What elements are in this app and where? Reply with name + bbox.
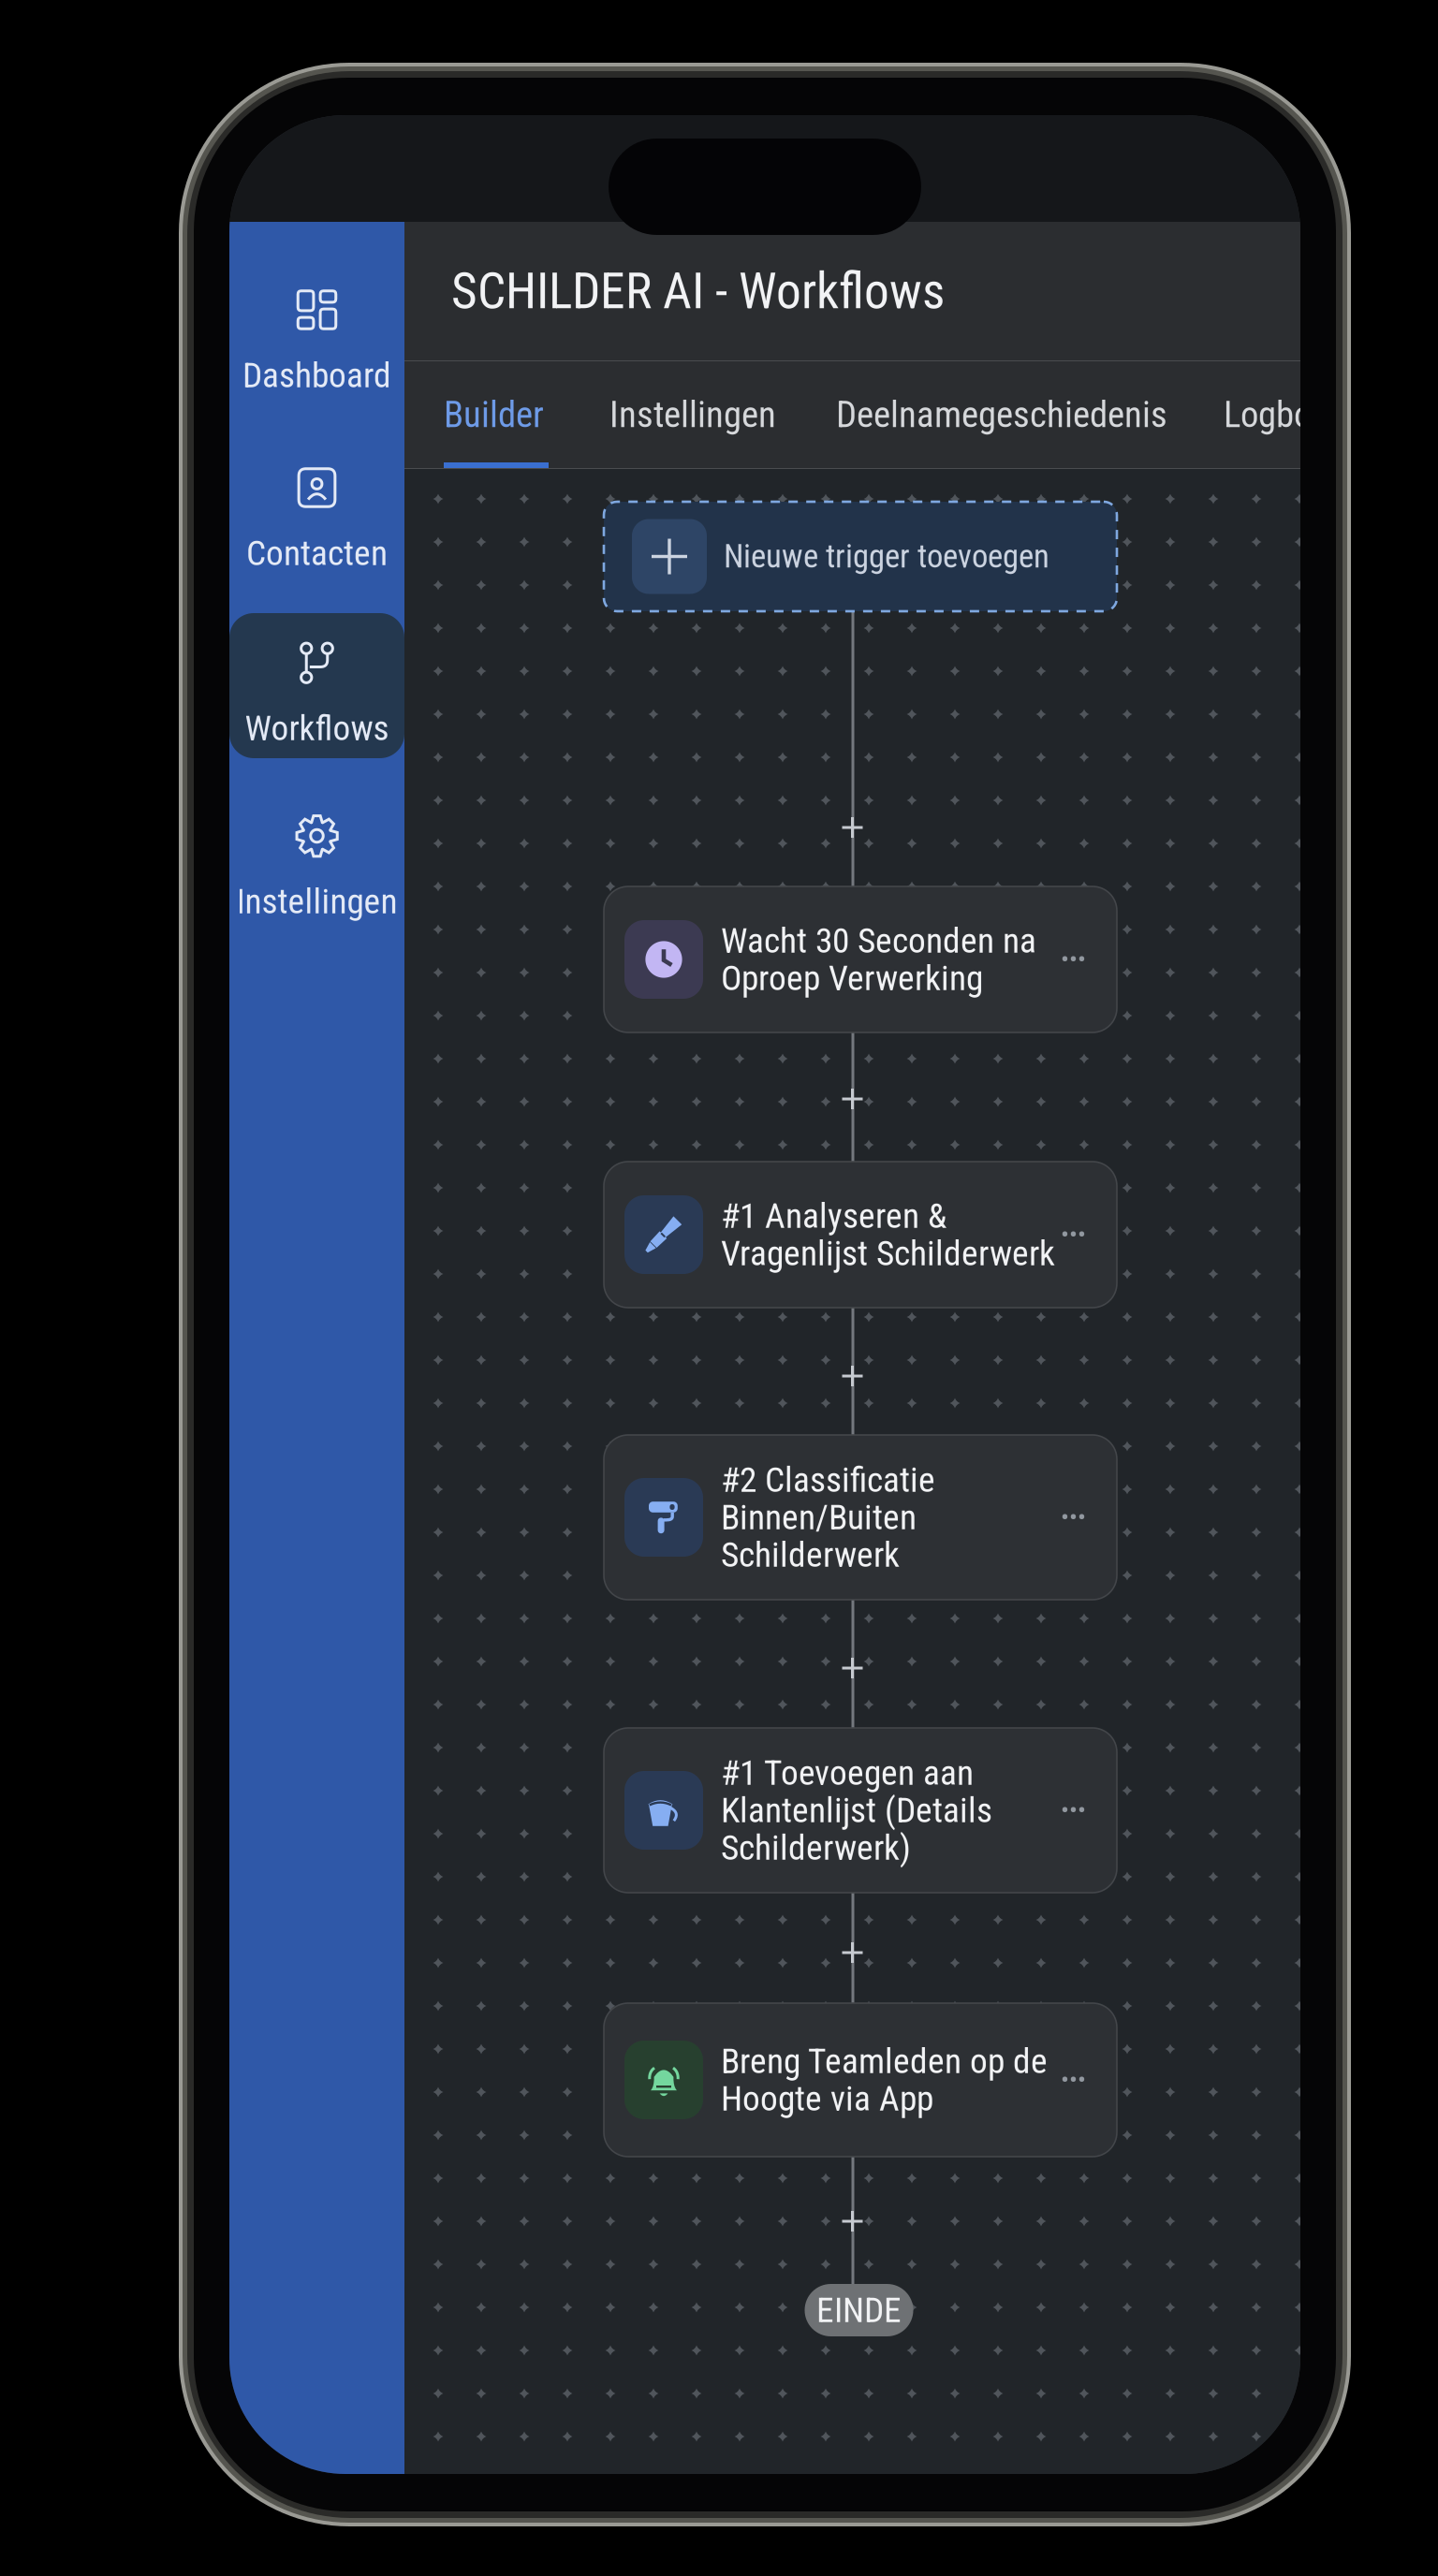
staticText: Schilderwerk) xyxy=(721,1827,911,1868)
staticText: Deelnamegeschiedenis xyxy=(836,393,1167,436)
button[interactable]: Logboek xyxy=(1224,361,1373,468)
button[interactable]: Deelnamegeschiedenis xyxy=(836,361,1173,468)
button[interactable]: Instellingen xyxy=(229,786,404,931)
button[interactable]: #1 Toevoegen aan xyxy=(604,1728,1117,1893)
staticText: ••• xyxy=(1061,945,1086,974)
staticText: ••• xyxy=(1061,1220,1086,1249)
staticText: Vragenlijst Schilderwerk xyxy=(721,1233,1055,1274)
staticText: EINDE xyxy=(816,2290,902,2331)
staticText: Dashboard xyxy=(242,355,391,396)
button[interactable]: Workflows xyxy=(229,613,404,758)
button[interactable]: Breng Teamleden op de xyxy=(604,2003,1117,2157)
staticText: Binnen/Buiten xyxy=(721,1497,917,1538)
staticText: Instellingen xyxy=(236,881,397,922)
staticText: ••• xyxy=(1061,2065,1086,2095)
staticText: #2 Classificatie xyxy=(721,1459,935,1500)
staticText: Nieuwe trigger toevoegen xyxy=(724,537,1049,575)
button[interactable]: Nieuwe trigger toevoegen xyxy=(604,502,1117,611)
staticText: Wacht 30 Seconden na xyxy=(721,920,1036,961)
button[interactable]: #1 Analyseren & xyxy=(604,1162,1117,1308)
staticText: SCHILDER AI - Workflows xyxy=(451,262,945,320)
staticText: Workflows xyxy=(245,708,389,749)
staticText: Breng Teamleden op de xyxy=(721,2041,1048,2082)
staticText: Oproep Verwerking xyxy=(721,958,983,999)
button[interactable]: #2 Classificatie xyxy=(604,1435,1117,1600)
button[interactable]: Builder xyxy=(444,361,549,468)
staticText: Contacten xyxy=(246,533,388,574)
staticText: Logboek xyxy=(1224,393,1344,436)
staticText: Builder xyxy=(444,393,544,436)
staticText: ••• xyxy=(1061,1503,1086,1532)
staticText: ••• xyxy=(1061,1796,1086,1825)
button[interactable]: Wacht 30 Seconden na xyxy=(604,886,1117,1032)
button[interactable]: Instellingen xyxy=(609,361,778,468)
staticText: Instellingen xyxy=(609,393,776,436)
button[interactable]: Dashboard xyxy=(229,260,404,405)
button[interactable]: Contacten xyxy=(229,438,404,583)
staticText: #1 Toevoegen aan xyxy=(721,1752,974,1793)
staticText: Schilderwerk xyxy=(721,1534,900,1575)
staticText: Hoogte via App xyxy=(721,2078,933,2119)
staticText: #1 Analyseren & xyxy=(721,1195,946,1236)
staticText: Klantenlijst (Details xyxy=(721,1790,992,1831)
